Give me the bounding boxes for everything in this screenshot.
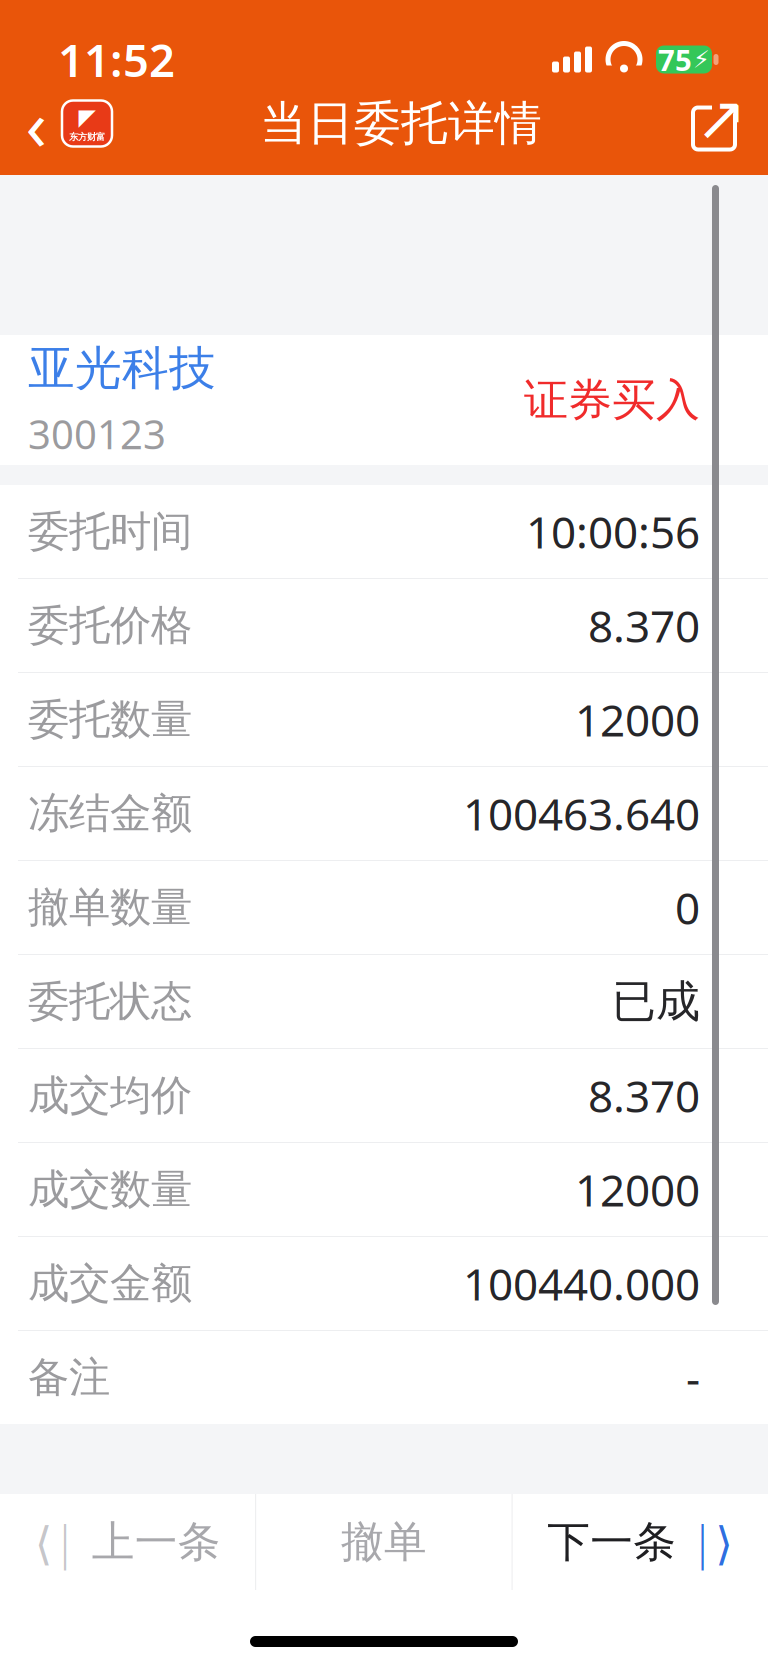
button[interactable]: 撤单 [256, 1494, 512, 1590]
staticText: 11:52 [58, 29, 175, 90]
staticText: 8.370 [588, 596, 700, 655]
staticText: 委托价格 [28, 600, 192, 651]
staticText: ⟨| [35, 1512, 78, 1572]
staticText: 证券买入 [524, 373, 700, 427]
staticText: 东方财富 [69, 131, 105, 143]
staticText: 委托时间 [28, 506, 192, 557]
staticText: 上一条 [92, 1516, 221, 1568]
staticText: 委托状态 [28, 976, 192, 1027]
button[interactable]: 分享 [686, 92, 742, 154]
button[interactable]: 东方财富 [58, 92, 116, 154]
staticText: 75 [658, 40, 692, 79]
staticText: - [686, 1348, 700, 1407]
button[interactable]: 下一条 [513, 1494, 768, 1590]
button[interactable]: 返回 [14, 92, 58, 154]
staticText: 撤单 [341, 1516, 427, 1568]
staticText: 撤单数量 [28, 882, 192, 933]
staticText: 12000 [575, 1160, 700, 1219]
staticText: 成交金额 [28, 1258, 192, 1309]
staticText: 成交均价 [28, 1070, 192, 1121]
button[interactable]: ⟨| [0, 1494, 255, 1590]
staticText: 100440.000 [463, 1254, 700, 1313]
staticText: ↗ [695, 84, 746, 153]
staticText: 0 [675, 878, 700, 937]
staticText: 当日委托详情 [260, 95, 542, 152]
staticText: 备注 [28, 1352, 110, 1403]
staticText: 已成 [612, 974, 700, 1028]
staticText: 成交数量 [28, 1164, 192, 1215]
staticText: ◤ [78, 104, 95, 130]
staticText: 10:00:56 [526, 502, 700, 561]
staticText: 300123 [28, 407, 166, 460]
staticText: 冻结金额 [28, 788, 192, 839]
staticText: 12000 [575, 690, 700, 749]
staticText: 8.370 [588, 1066, 700, 1125]
staticText: |⟩ [690, 1512, 733, 1572]
staticText: ⚡︎ [693, 46, 710, 73]
staticText: 100463.640 [463, 784, 700, 843]
staticText: 下一条 [547, 1516, 676, 1568]
staticText: 委托数量 [28, 694, 192, 745]
staticText: ‹ [25, 77, 46, 170]
staticText: 亚光科技 [28, 340, 216, 397]
